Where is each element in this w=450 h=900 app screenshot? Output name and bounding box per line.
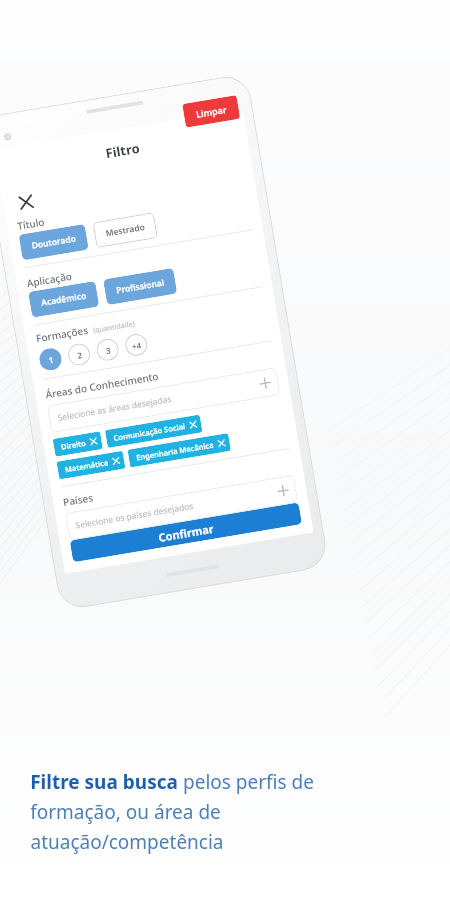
staticText: Mestrado [104,221,146,239]
staticText: Direito [60,438,86,452]
staticText: Engenharia Mecânica [135,440,215,462]
staticText: Acadêmico [40,290,87,309]
staticText: Filtro [104,139,141,162]
staticText: atuação/competência [30,829,224,855]
button[interactable]: 2 [66,342,92,367]
staticText: Comunicação Social [112,421,186,443]
button[interactable]: Engenharia Mecânica [127,433,231,468]
button[interactable]: Limpar [182,95,240,128]
staticText: Selecione os países desejados [74,500,194,531]
button[interactable]: 3 [95,337,120,362]
staticText: Matemática [64,457,109,474]
button[interactable]: Mestrado [92,212,158,248]
button[interactable]: Profissional [103,268,177,305]
staticText: Limpar [195,103,227,120]
staticText: Aplicação [25,269,73,290]
button[interactable]: 1 [38,347,63,372]
staticText: Filtre sua busca [30,769,178,795]
staticText: pelos perfis de [178,769,314,795]
staticText: (quantidade) [92,319,136,336]
button[interactable]: Direito [53,431,103,457]
staticText: formação, ou área de [30,799,221,825]
staticText: Áreas do Conhecimento [44,369,160,402]
staticText: Formações [35,323,89,345]
staticText: Doutorado [30,233,77,252]
staticText: 1 [48,354,54,366]
staticText: Título [16,214,46,233]
button[interactable]: Acadêmico [28,281,99,318]
button[interactable]: Confirmar [70,502,302,562]
button[interactable]: +4 [124,332,149,358]
button[interactable]: Selecione os países desejados [65,475,298,541]
button[interactable]: Fechar [11,187,41,217]
button[interactable]: Selecione as áreas desejadas [47,367,280,433]
staticText: 3 [105,344,111,356]
button[interactable]: Doutorado [18,224,89,260]
staticText: Países [62,490,94,509]
button[interactable]: Matemática [56,451,125,479]
staticText: +4 [130,339,142,352]
button[interactable]: Comunicação Social [105,414,203,448]
staticText: Profissional [115,277,165,296]
staticText: 2 [76,349,83,361]
staticText: Confirmar [157,521,215,545]
staticText: Selecione as áreas desejadas [56,393,173,424]
